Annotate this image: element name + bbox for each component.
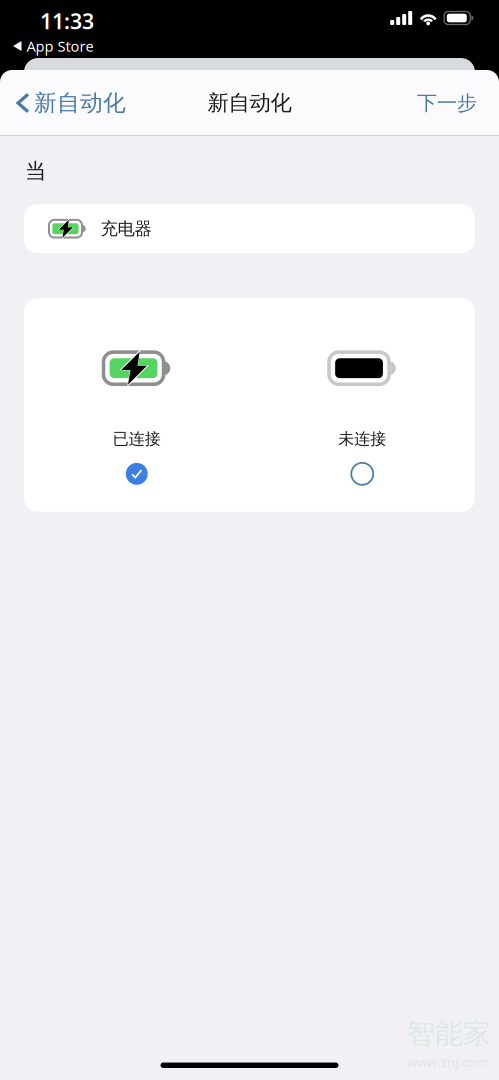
button[interactable]: 未连接 bbox=[249, 351, 475, 485]
staticText: 未连接 bbox=[338, 429, 386, 449]
button[interactable]: 已连接 bbox=[24, 351, 249, 485]
staticText: App Store bbox=[26, 36, 93, 56]
staticText: 下一步 bbox=[417, 91, 477, 115]
staticText: 智能家 bbox=[407, 1016, 491, 1051]
staticText: 11:33 bbox=[40, 7, 94, 35]
staticText: 新自动化 bbox=[34, 89, 126, 117]
button[interactable]: 充电器 bbox=[24, 204, 475, 253]
staticText: 已连接 bbox=[113, 429, 161, 449]
button[interactable]: 下一步 bbox=[395, 76, 499, 130]
button[interactable]: 新自动化 bbox=[0, 76, 136, 130]
staticText: 充电器 bbox=[100, 218, 151, 239]
staticText: 新自动化 bbox=[207, 90, 291, 116]
staticText: 当 bbox=[25, 158, 46, 184]
staticText: www.znj.com bbox=[407, 1053, 488, 1070]
